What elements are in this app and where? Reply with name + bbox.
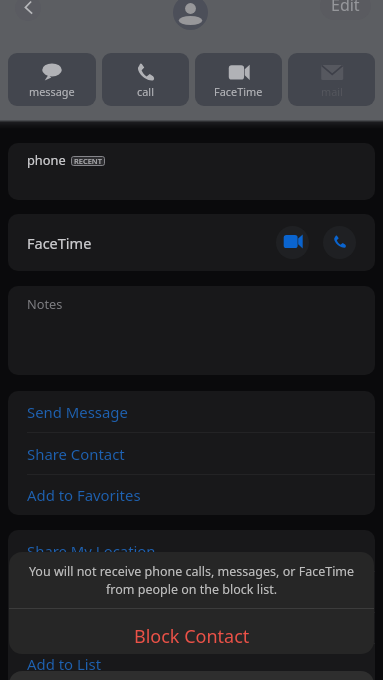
staticText: Add to Favorites [27,485,141,505]
staticText: Send Message [27,402,128,422]
staticText: Share My Location [27,541,156,561]
button[interactable]: mail [288,53,375,106]
staticText: phone [27,151,66,168]
staticText: Add to Favorites [27,623,141,643]
button[interactable]: Edit [320,0,371,20]
button[interactable]: Back [15,0,41,21]
button[interactable]: FaceTime audio [323,226,356,259]
staticText: mail [321,84,343,99]
button[interactable]: FaceTime video [276,226,309,259]
staticText: Add to Emergency Contacts [27,582,220,602]
staticText: FaceTime [27,233,92,253]
button[interactable]: message [8,53,96,106]
staticText: Block Contact [134,624,250,649]
staticText: Edit [331,0,360,16]
staticText: Share Contact [27,444,125,464]
button[interactable]: Send Message [8,391,375,432]
button[interactable]: Cancel [9,671,374,680]
button[interactable]: Add to Favorites [8,475,375,515]
staticText: Notes [27,295,63,312]
button[interactable]: Share Contact [8,433,375,474]
staticText: You will not receive phone calls, messag… [23,563,360,598]
staticText: call [137,84,154,99]
button[interactable]: FaceTime [195,53,282,106]
staticText: RECENT [74,156,102,166]
button[interactable]: call [102,53,189,106]
button[interactable]: Add to Favorites [8,612,375,653]
staticText: message [29,84,75,99]
staticText: Add to List [27,654,102,674]
button[interactable]: Add to List [8,643,375,680]
button[interactable]: Share My Location [8,530,375,571]
button[interactable]: Add to Emergency Contacts [8,571,375,612]
button[interactable]: Block Contact [9,609,374,654]
staticText: FaceTime [214,84,263,99]
